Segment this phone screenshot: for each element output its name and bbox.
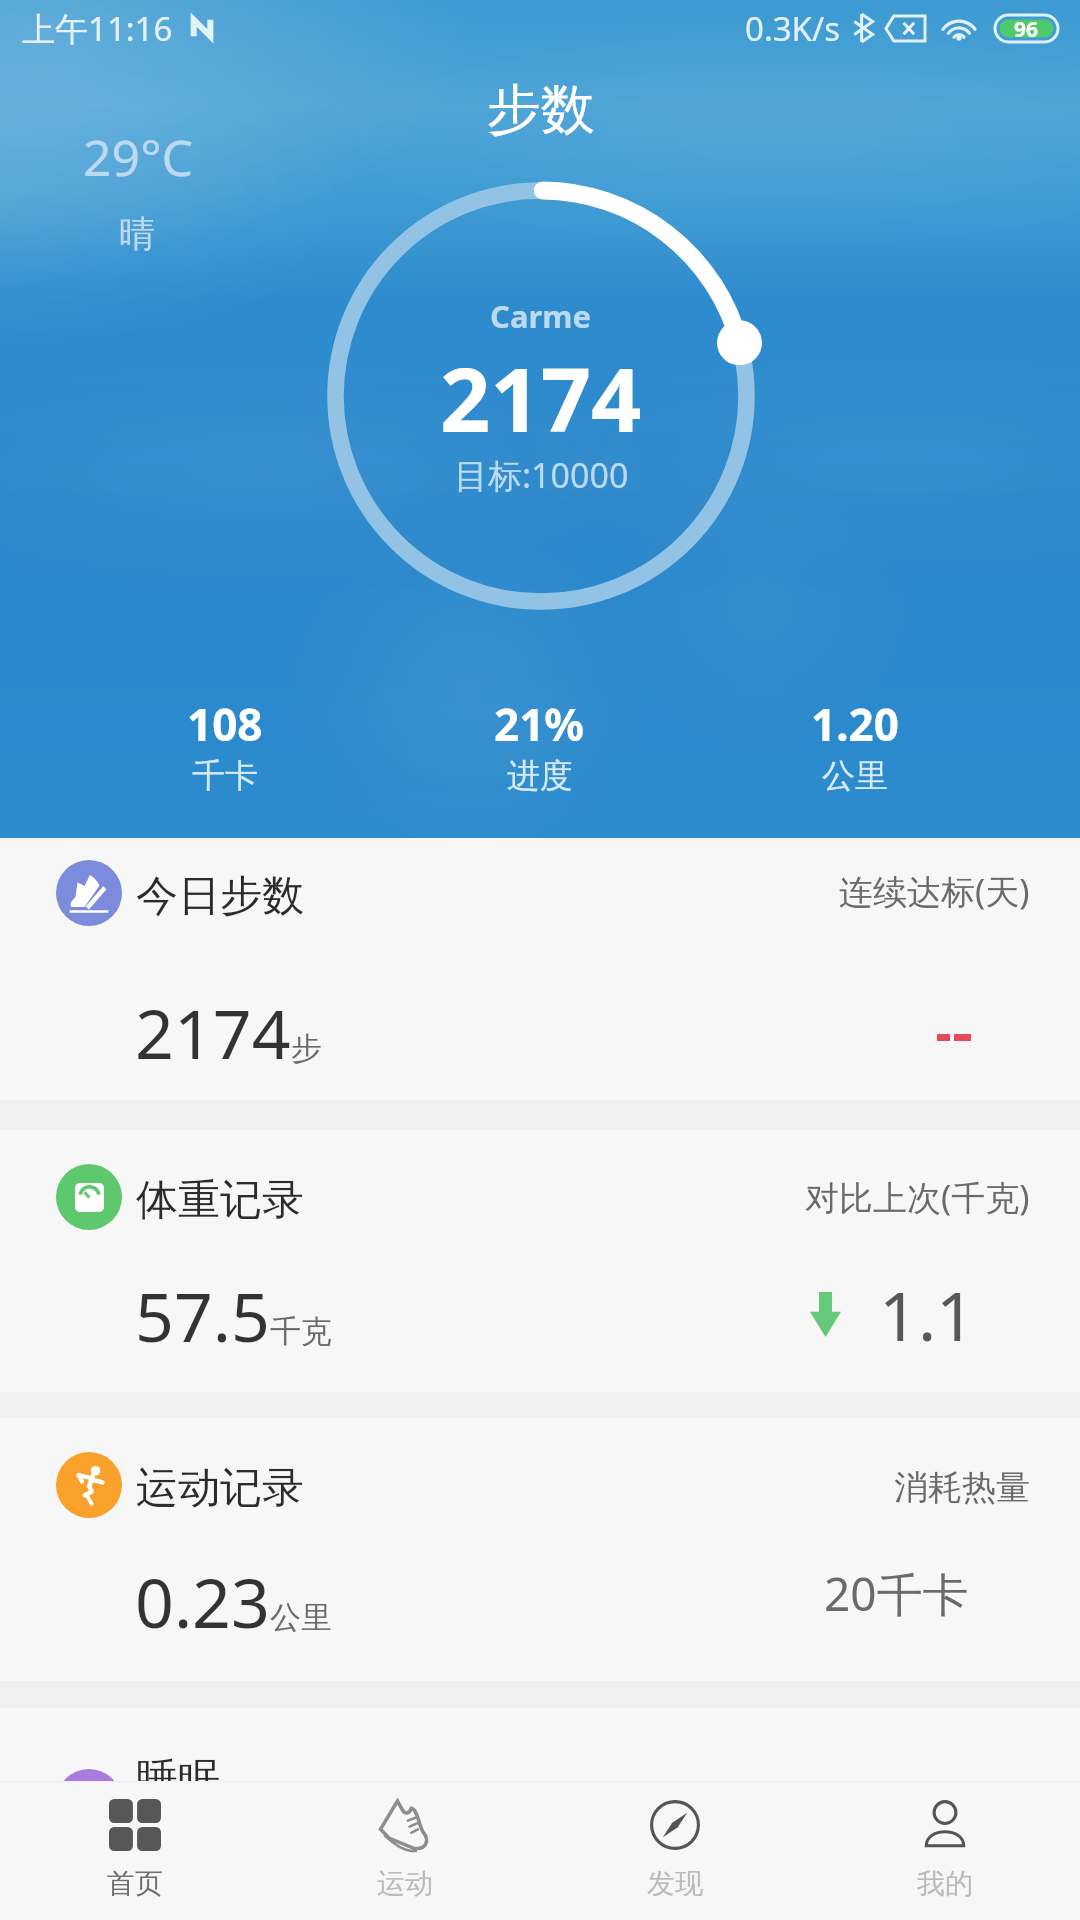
staticText: 睡眠 [136,1753,220,1806]
button[interactable]: 今日步数 [0,838,1080,1100]
staticText: 上午11:16 [22,6,173,51]
button[interactable]: 运动 [270,1782,540,1920]
button[interactable]: 发现 [540,1782,810,1920]
staticText: 首页 [107,1866,163,1901]
staticText: 0.23 [135,1555,270,1648]
staticText: 1.1 [879,1268,976,1361]
staticText: 我的 [917,1866,973,1901]
staticText: 步数 [487,76,595,144]
staticText: 消耗热量 [894,1466,1030,1509]
staticText: 千克 [270,1312,332,1351]
staticText: 21% [494,694,585,754]
staticText: 0.3K/s [745,6,841,51]
staticText: 晴 [119,211,155,256]
staticText: 公里 [270,1598,332,1637]
staticText: 公里 [822,755,888,797]
staticText: 29°C [83,123,194,191]
staticText: 2174 [135,986,291,1079]
staticText: 体重记录 [136,1174,304,1227]
button[interactable]: 运动记录 [0,1418,1080,1681]
staticText: 目标:10000 [454,452,629,498]
staticText: 20千卡 [824,1562,969,1625]
staticText: 1.20 [811,694,899,754]
staticText: 发现 [647,1866,703,1901]
staticText: 运动 [377,1866,433,1901]
staticText: 千卡 [192,755,258,797]
staticText: 对比上次(千克) [805,1174,1030,1220]
staticText: 2174 [440,338,642,458]
staticText: 96 [1014,15,1039,42]
staticText: 连续达标(天) [839,868,1030,914]
staticText: 57.5 [135,1269,270,1362]
staticText: 108 [187,694,263,754]
button[interactable]: 体重记录 [0,1130,1080,1392]
staticText: 运动记录 [136,1462,304,1515]
button[interactable]: 我的 [810,1782,1080,1920]
button[interactable]: 首页 [0,1782,270,1920]
staticText: 进度 [507,755,573,797]
button[interactable]: 睡眠 [0,1708,1080,1788]
staticText: 今日步数 [136,870,304,923]
staticText: Carme [490,295,592,337]
staticText: 步 [291,1029,322,1068]
